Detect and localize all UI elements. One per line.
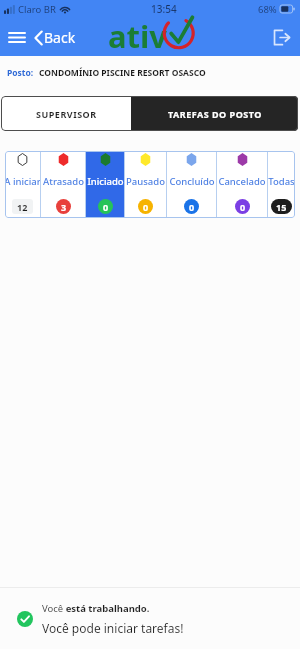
staticText: 0 [143,201,149,213]
button[interactable]: TAREFAS DO POSTO [131,96,298,131]
staticText: Posto: [7,67,34,79]
button[interactable]: Todas [268,151,295,218]
button[interactable]: Back [34,28,76,47]
staticText: Você está trabalhando. [42,602,150,615]
button[interactable]: A iniciar [5,151,40,218]
staticText: 12 [17,201,28,213]
staticText: 0 [189,201,195,213]
button[interactable]: Concluído [167,151,216,218]
staticText: Concluído [169,175,215,188]
staticText: Cancelado [218,175,266,188]
staticText: Claro BR [18,3,56,16]
button[interactable]: Pausado [125,151,166,218]
staticText: 15 [276,201,287,213]
staticText: Iniciado [87,175,124,188]
staticText: ativ [108,15,167,53]
staticText: CONDOMÍNIO PISCINE RESORT OSASCO [39,67,206,79]
staticText: Pausado [126,175,165,188]
staticText: Back [44,28,76,47]
button[interactable]: Iniciado [86,151,124,218]
button[interactable]: SUPERVISOR [1,96,131,131]
button[interactable]: Logout [266,22,296,52]
staticText: 13:54 [151,2,177,16]
staticText: Atrasado [43,175,84,188]
staticText: A iniciar [5,175,41,188]
staticText: 68% [258,3,277,16]
button[interactable]: Menu [5,25,29,49]
button[interactable]: Atrasado [41,151,85,218]
staticText: Todas [268,175,295,188]
staticText: SUPERVISOR [36,108,97,120]
staticText: Você pode iniciar tarefas! [42,620,184,636]
staticText: 0 [103,201,109,213]
button[interactable]: Cancelado [217,151,267,218]
staticText: TAREFAS DO POSTO [168,108,262,120]
staticText: 0 [240,201,246,213]
staticText: 3 [61,201,67,213]
